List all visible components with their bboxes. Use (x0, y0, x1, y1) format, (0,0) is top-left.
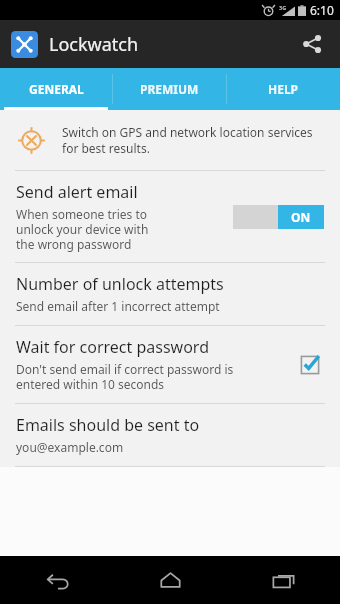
staticText: 6:10 (310, 2, 334, 18)
button[interactable]: Send alert email (0, 171, 340, 262)
button[interactable]: Switch on GPS and network location servi… (0, 110, 340, 170)
staticText: When someone tries to unlock your device… (16, 206, 149, 252)
button[interactable]: Send alert email toggle, on (233, 205, 324, 229)
button[interactable]: Wait for correct password checkbox, chec… (296, 350, 324, 378)
staticText: Don't send email if correct password is … (16, 361, 234, 392)
button[interactable]: Wait for correct password (0, 326, 340, 403)
staticText: ON (291, 209, 311, 225)
staticText: you@example.com (16, 439, 124, 455)
staticText: Lockwatch (49, 32, 139, 57)
staticText: 3G (279, 4, 287, 11)
button[interactable]: GENERAL (0, 68, 112, 110)
button[interactable]: Home (114, 556, 227, 604)
button[interactable]: PREMIUM (113, 68, 226, 110)
staticText: Wait for correct password (16, 336, 209, 358)
button[interactable]: Recent apps (227, 556, 340, 604)
staticText: Emails should be sent to (16, 414, 200, 436)
staticText: GENERAL (29, 81, 84, 97)
button[interactable]: Share (288, 20, 336, 68)
button[interactable]: Back (0, 556, 114, 604)
staticText: Number of unlock attempts (16, 273, 224, 295)
staticText: Send alert email (16, 181, 138, 203)
staticText: Switch on GPS and network location servi… (62, 124, 322, 156)
staticText: Send email after 1 incorrect attempt (16, 298, 220, 314)
button[interactable]: Emails should be sent to (0, 404, 340, 466)
staticText: HELP (268, 81, 299, 97)
button[interactable]: HELP (227, 68, 340, 110)
staticText: PREMIUM (140, 81, 199, 97)
button[interactable]: Number of unlock attempts (0, 263, 340, 325)
